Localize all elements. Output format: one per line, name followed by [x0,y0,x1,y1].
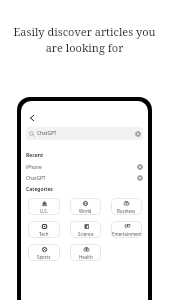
button[interactable]: Remove ChatGPT [137,175,143,181]
staticText: Recent [26,152,44,159]
button[interactable]: Back [26,114,37,122]
button[interactable]: ChatGPT [26,127,143,140]
staticText: U.S. [40,208,48,214]
staticText: Tech [39,231,49,237]
button[interactable]: iPhone [26,163,143,171]
button[interactable]: Business [111,198,142,215]
button[interactable]: Remove iPhone [137,164,143,170]
staticText: World [79,208,92,214]
staticText: Easily discover articles you are looking… [10,24,159,55]
staticText: Health [79,254,93,260]
button[interactable]: Entertainment [111,221,142,238]
button[interactable]: Health [70,244,101,261]
button[interactable]: Clear search [135,131,141,137]
staticText: iPhone [26,164,42,171]
button[interactable]: U.S. [28,198,60,215]
button[interactable]: ChatGPT [26,174,143,182]
staticText: Sports [37,254,51,260]
staticText: Entertainment [112,231,142,237]
staticText: ChatGPT [37,130,57,137]
staticText: ChatGPT [26,175,46,182]
button[interactable]: Tech [28,221,60,238]
button[interactable]: World [70,198,101,215]
staticText: Business [117,208,136,214]
staticText: Science [78,231,94,237]
staticText: Categories [26,186,53,193]
button[interactable]: Sports [28,244,60,261]
button[interactable]: Science [70,221,101,238]
